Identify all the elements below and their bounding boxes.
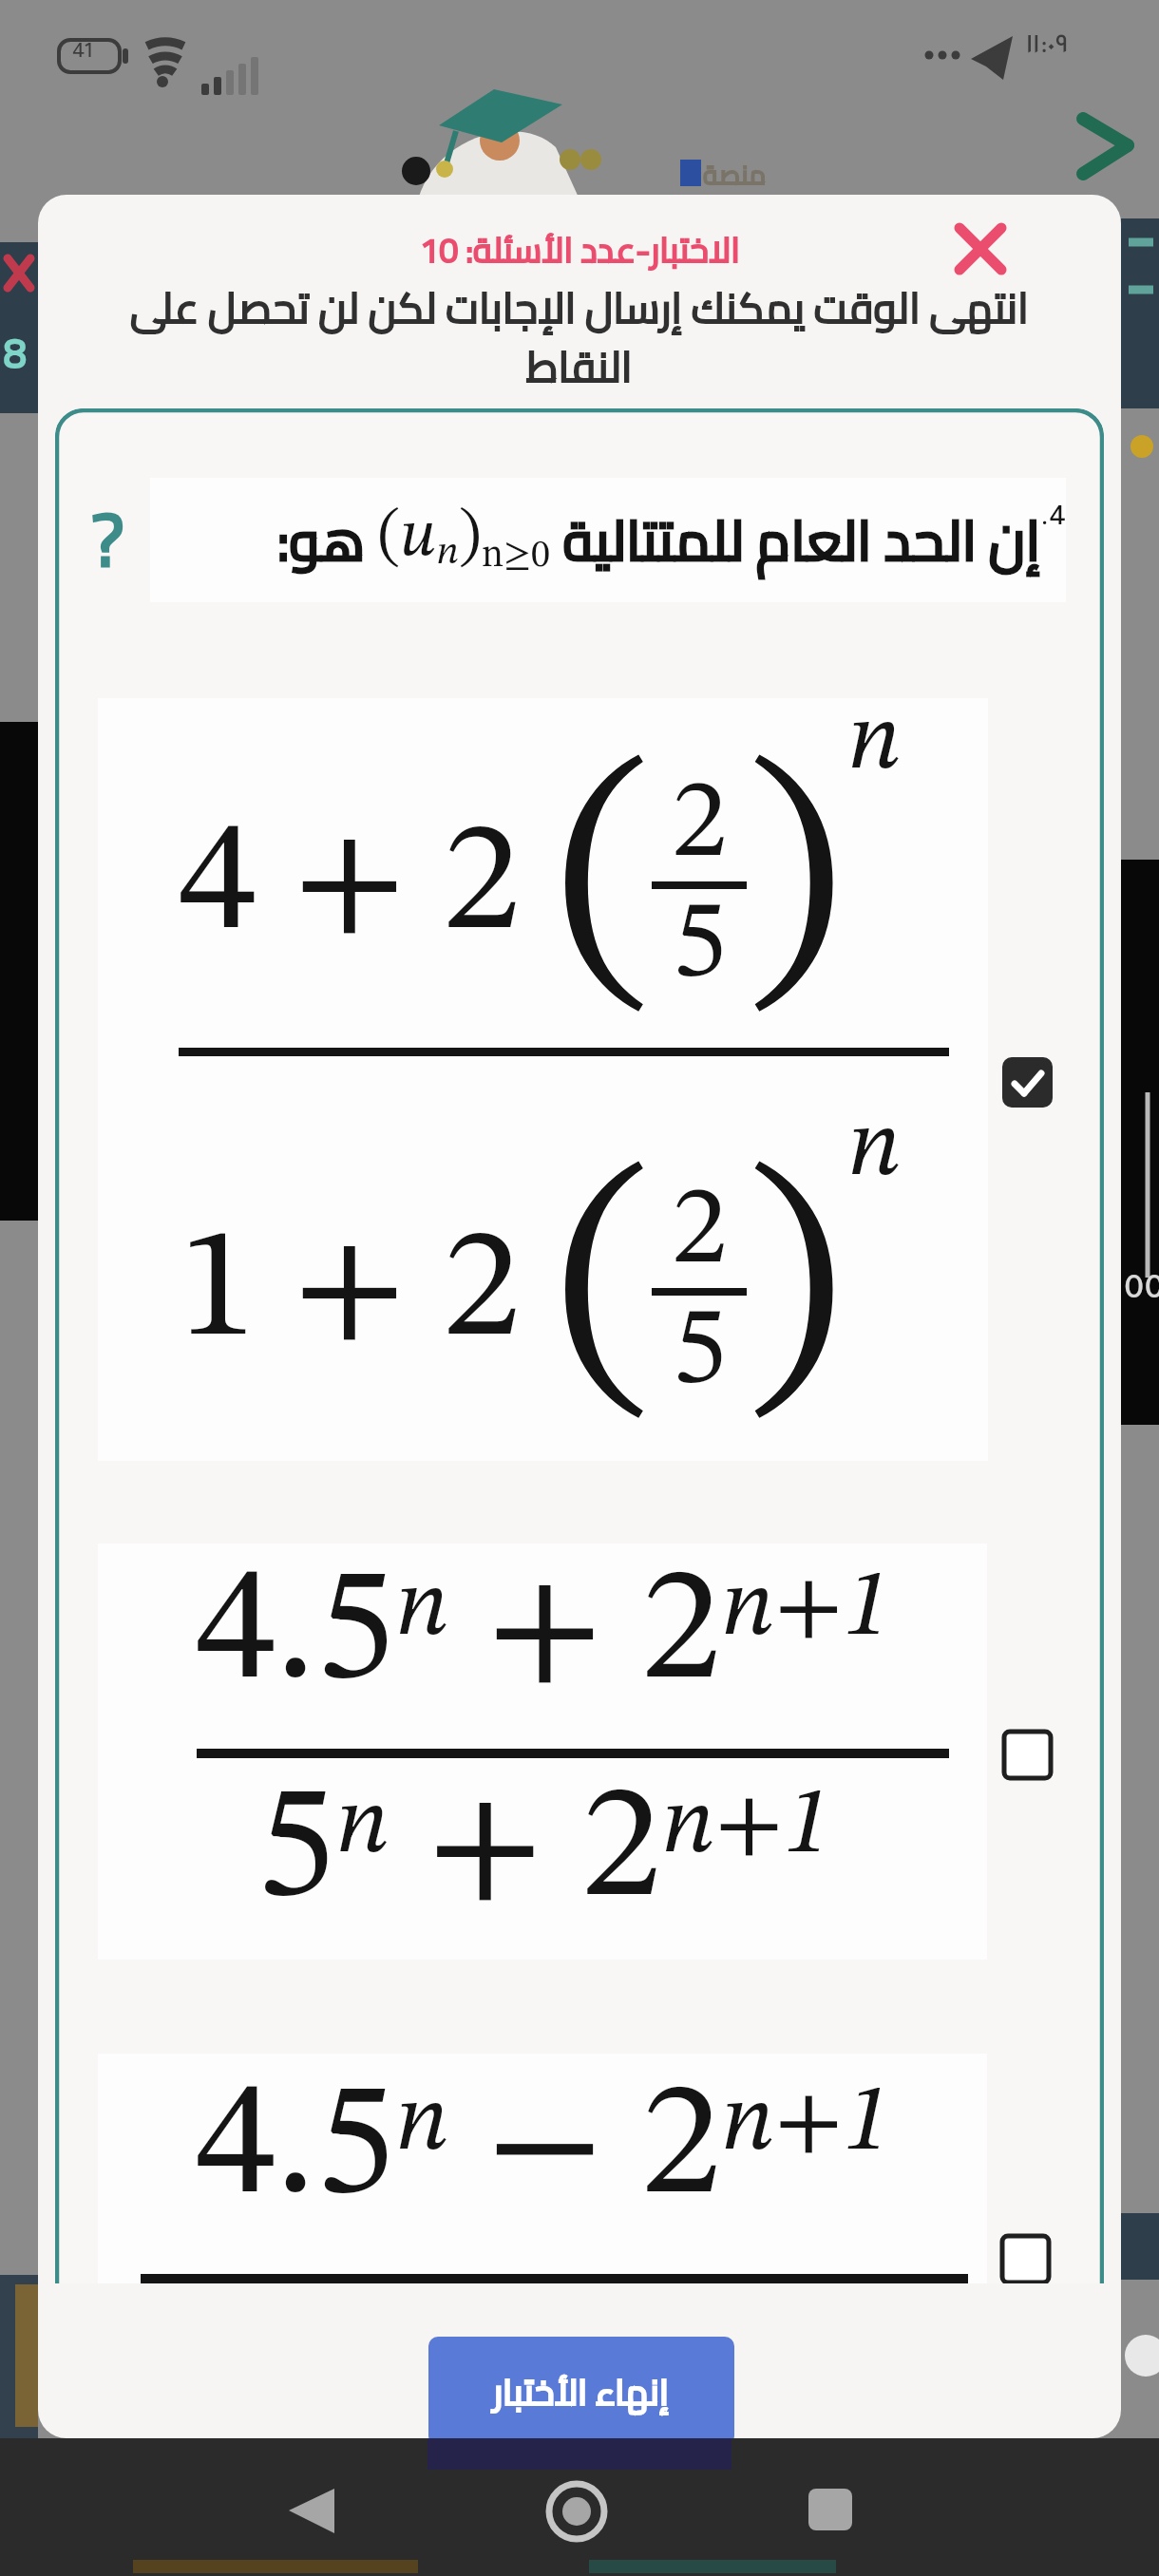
staticText: 00 [1124,1275,1159,1311]
staticText: هو: [276,488,377,592]
button[interactable]: 4 + 2 [98,698,988,1461]
staticText: ) [747,1154,845,1430]
staticText: ? [91,469,124,608]
button[interactable]: 4. [150,478,1066,602]
staticText: الاختبار-عدد الأسئلة: 10 [420,218,740,281]
staticText: ١١:٠٩ [1026,32,1069,63]
button[interactable]: 4.5n + 2n+1 [98,1544,987,1960]
staticText: 4. [1040,504,1066,535]
staticText: 4 + 2 [179,807,521,964]
staticText: انتهى الوقت يمكنك إرسال الإجابات لكن لن … [130,269,1029,347]
staticText: ( [553,748,652,1023]
staticText: 41 [72,43,93,66]
staticText: النقاط [526,328,633,406]
staticText: 5 [672,889,728,1001]
staticText: 8 [4,315,27,390]
staticText: انتهى الوقت يمكنك إرسال الإجابات لكن لن … [130,269,1029,347]
staticText: إنهاء الأختبار [493,2358,670,2425]
staticText: الاختبار-عدد الأسئلة: 10 [420,218,740,281]
staticText: النقاط [526,328,633,406]
staticText: منصة [703,150,767,199]
staticText: 2 [672,769,728,881]
staticText: ) [747,748,845,1023]
staticText: إن الحد العام للمتتالية [550,488,1040,592]
staticText: ? [91,469,124,608]
staticText: ( [553,1154,652,1430]
staticText: 8 [4,315,27,390]
staticText: هو: [276,488,377,592]
staticText: إنهاء الأختبار [493,2358,670,2425]
staticText: 5 [672,1296,728,1408]
button[interactable] [1002,1730,1053,1780]
button[interactable]: 4.5n − 2n+1 [98,2054,987,2283]
button[interactable] [1002,1057,1053,1108]
button[interactable] [953,221,1008,276]
staticText: n [847,1102,902,1197]
staticText: (un)n≥0 [377,505,550,576]
button[interactable] [275,2476,348,2547]
staticText: 4.5n − 2n+1 [196,2068,890,2229]
staticText: إن الحد العام للمتتالية [550,488,1040,592]
staticText: 1 + 2 [179,1214,521,1371]
button[interactable] [1000,2234,1051,2283]
staticText: 4.5n + 2n+1 [196,1553,890,1714]
button[interactable] [796,2476,868,2547]
staticText: 5n + 2n+1 [256,1771,830,1932]
staticText: منصة [703,150,767,199]
staticText: n [847,695,902,790]
button[interactable] [541,2476,614,2547]
button[interactable]: إنهاء الأختبار [428,2337,734,2438]
staticText: 2 [672,1176,728,1288]
